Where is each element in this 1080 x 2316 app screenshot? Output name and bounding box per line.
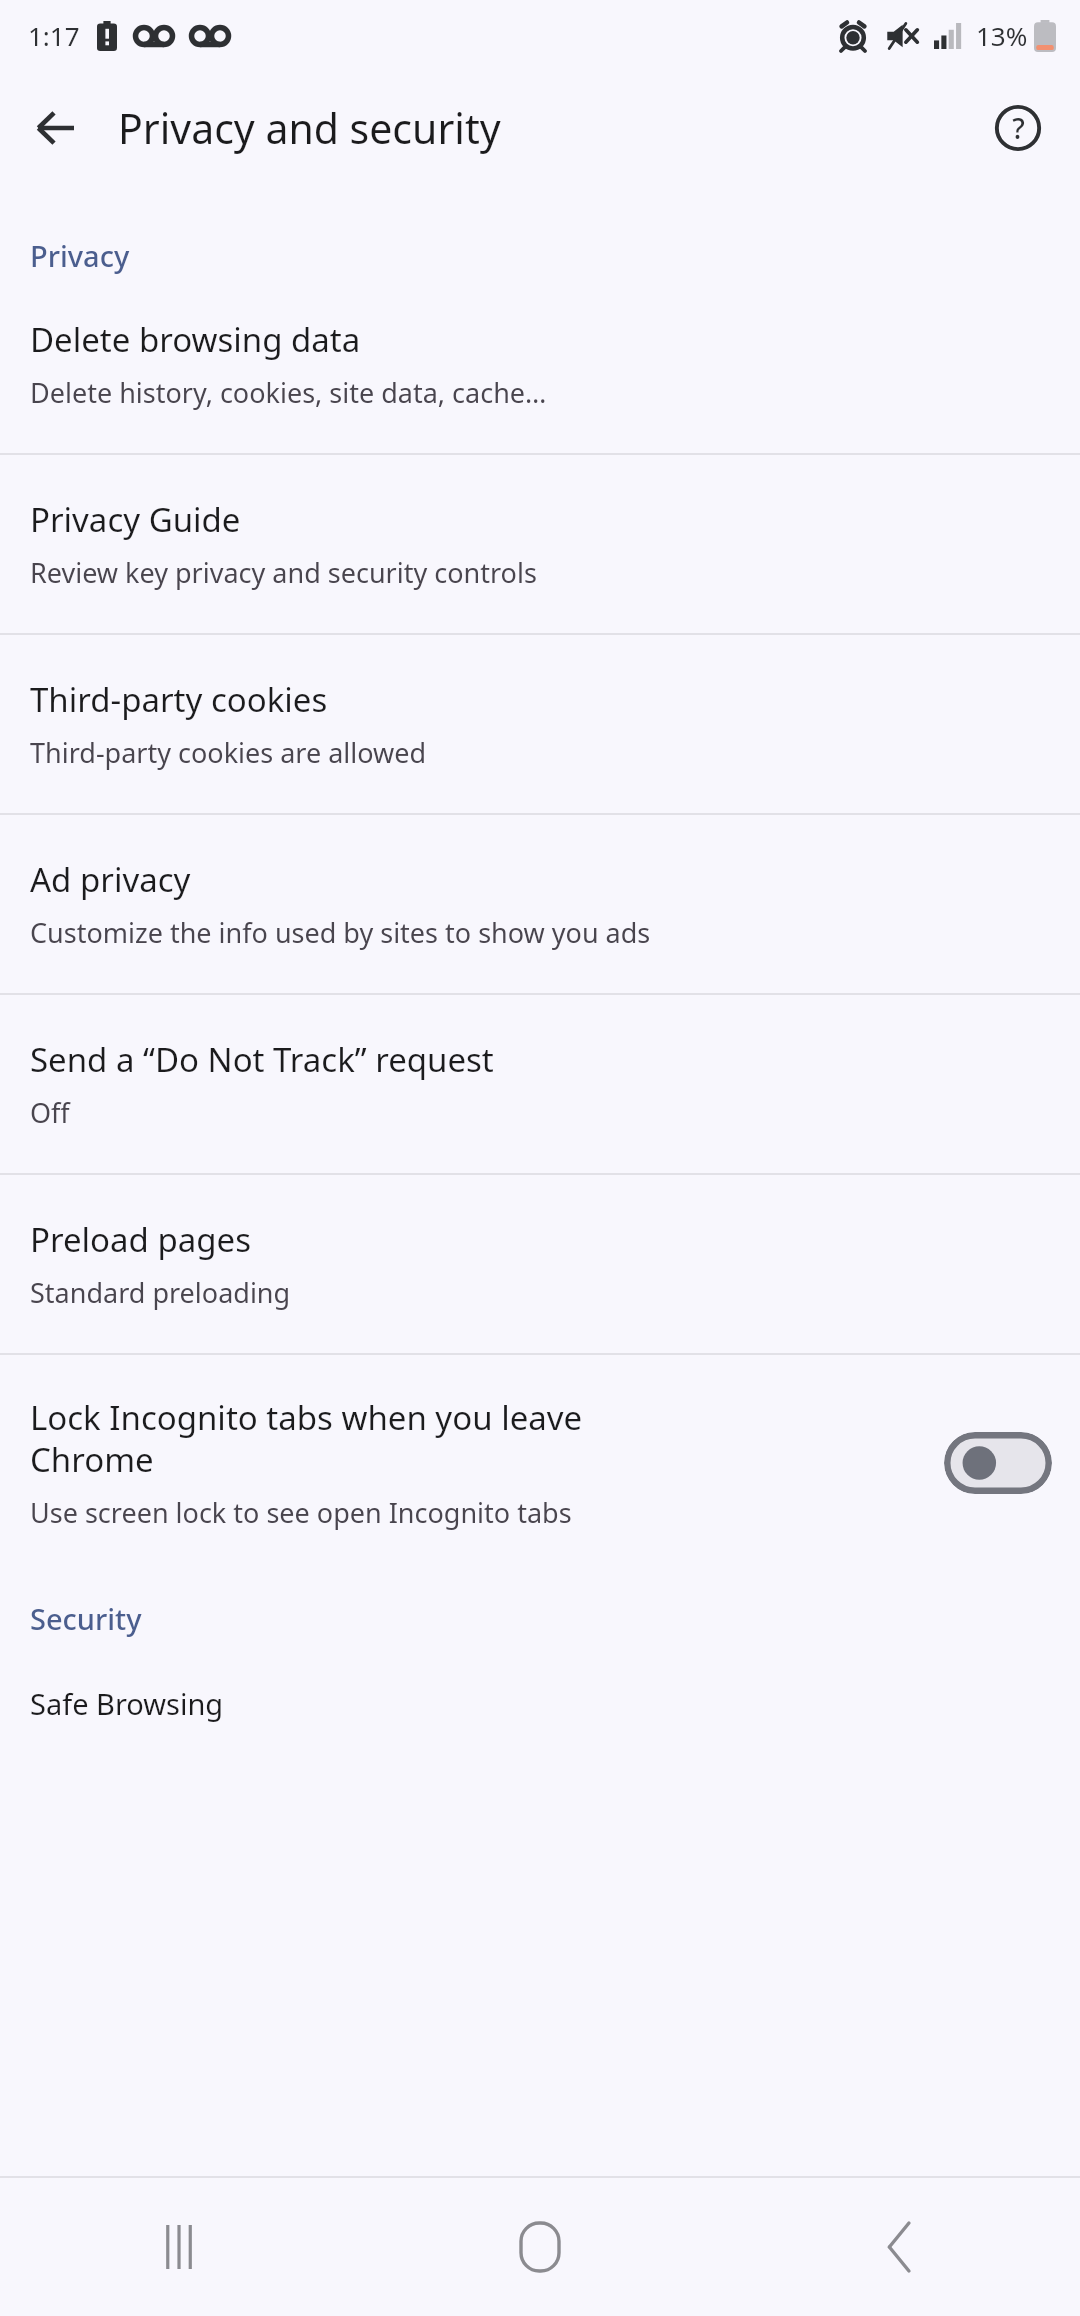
- staticText: Customize the info used by sites to show…: [30, 914, 651, 951]
- staticText: Security: [30, 1599, 142, 1638]
- button[interactable]: Home: [490, 2197, 590, 2297]
- staticText: ?: [1012, 109, 1025, 147]
- staticText: Ad privacy: [30, 857, 191, 902]
- staticText: Privacy and security: [118, 100, 501, 156]
- button[interactable]: Back: [850, 2197, 950, 2297]
- staticText: 1:17: [28, 18, 80, 53]
- button[interactable]: Back: [20, 92, 92, 164]
- button[interactable]: Recent apps: [130, 2197, 230, 2297]
- staticText: Privacy: [30, 236, 130, 275]
- staticText: Lock Incognito tabs when you leave Chrom…: [30, 1395, 590, 1482]
- staticText: Off: [30, 1094, 70, 1131]
- staticText: Preload pages: [30, 1217, 251, 1262]
- button[interactable]: Lock Incognito tabs toggle, off: [944, 1432, 1052, 1494]
- staticText: Privacy Guide: [30, 497, 241, 542]
- staticText: Delete history, cookies, site data, cach…: [30, 374, 547, 411]
- button[interactable]: Ad privacy: [0, 815, 1080, 993]
- button[interactable]: Safe Browsing: [0, 1684, 1080, 1723]
- staticText: Delete browsing data: [30, 317, 361, 362]
- button[interactable]: Preload pages: [0, 1175, 1080, 1353]
- staticText: Third-party cookies: [30, 677, 328, 722]
- button[interactable]: Lock Incognito tabs when you leave Chrom…: [0, 1355, 1080, 1571]
- staticText: Safe Browsing: [30, 1684, 224, 1723]
- staticText: Send a “Do Not Track” request: [30, 1037, 494, 1082]
- staticText: Third-party cookies are allowed: [30, 734, 427, 771]
- staticText: Standard preloading: [30, 1274, 291, 1311]
- staticText: Use screen lock to see open Incognito ta…: [30, 1494, 572, 1531]
- button[interactable]: Send a “Do Not Track” request: [0, 995, 1080, 1173]
- button[interactable]: Third-party cookies: [0, 635, 1080, 813]
- button[interactable]: Privacy Guide: [0, 455, 1080, 633]
- staticText: Review key privacy and security controls: [30, 554, 537, 591]
- button[interactable]: Help: [980, 90, 1056, 166]
- button[interactable]: Delete browsing data: [0, 275, 1080, 453]
- staticText: 13%: [976, 18, 1028, 53]
